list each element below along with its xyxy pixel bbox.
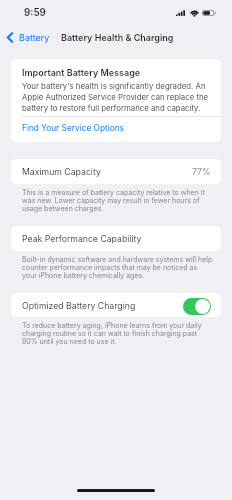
staticText: 77% (192, 167, 211, 178)
button[interactable]: Find Your Service Options (11, 117, 221, 142)
staticText: Peak Performance Capability (22, 234, 142, 245)
staticText: Maximum Capacity (22, 167, 101, 178)
staticText: Optimized Battery Charging (22, 301, 136, 312)
staticText: To reduce battery aging, iPhone learns f… (22, 321, 202, 345)
staticText: Important Battery Message (22, 67, 141, 78)
staticText: 9:59 (24, 7, 46, 19)
button[interactable]: Maximum Capacity (11, 159, 221, 184)
button[interactable]: Battery (0, 29, 56, 46)
staticText: Built-in dynamic software and hardware s… (22, 255, 213, 279)
staticText: This is a measure of battery capacity re… (22, 188, 205, 212)
staticText: Your battery's health is significantly d… (22, 81, 209, 113)
button[interactable]: Peak Performance Capability (11, 226, 221, 251)
staticText: Battery (19, 32, 50, 43)
button[interactable]: Optimized Battery Charging toggle (183, 298, 211, 315)
staticText: Battery Health & Charging (61, 32, 174, 43)
staticText: Find Your Service Options (22, 123, 124, 133)
